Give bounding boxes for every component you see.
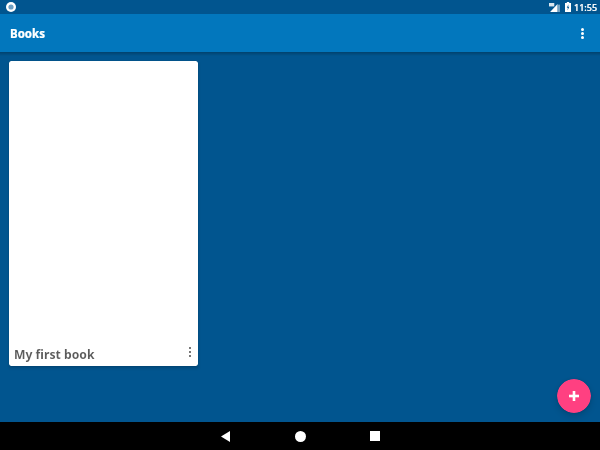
staticText: My first book: [14, 346, 186, 363]
button[interactable]: Add book: [557, 379, 591, 413]
button[interactable]: Back: [205, 422, 245, 450]
staticText: 11:55: [574, 1, 598, 13]
button[interactable]: Book options: [181, 337, 198, 366]
staticText: Books: [10, 26, 45, 42]
button[interactable]: More options: [565, 14, 600, 52]
button[interactable]: Home: [280, 422, 320, 450]
button[interactable]: Recent apps: [355, 422, 395, 450]
button[interactable]: My first book: [9, 61, 198, 366]
